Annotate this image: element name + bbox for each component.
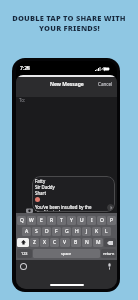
button[interactable]: G (62, 227, 71, 236)
button[interactable]: Shift (17, 238, 29, 247)
button[interactable]: M (93, 238, 103, 247)
staticText: Y (70, 217, 73, 224)
button[interactable]: N (82, 238, 92, 247)
staticText: G (65, 228, 69, 235)
staticText: Z (33, 239, 36, 246)
button[interactable]: H (72, 227, 81, 236)
button[interactable]: F (52, 227, 61, 236)
staticText: Q (20, 217, 24, 224)
button[interactable]: T (57, 216, 66, 225)
staticText: D (45, 228, 49, 235)
staticText: To: (19, 97, 26, 103)
staticText: Sir Daddy (35, 184, 55, 190)
staticText: K (95, 228, 99, 235)
button[interactable]: W (27, 216, 36, 225)
staticText: Shart (35, 190, 46, 196)
staticText: DOUBLE TAP TO SHARE WITH (12, 13, 126, 23)
staticText: 123 (21, 251, 28, 256)
staticText: You've been insulted by the Insultinator… (35, 204, 92, 212)
button[interactable]: V (60, 238, 70, 247)
button[interactable]: Emoji (19, 262, 28, 271)
button[interactable]: P (107, 216, 116, 225)
button[interactable]: L (102, 227, 111, 236)
staticText: X (43, 239, 46, 246)
staticText: M (96, 239, 101, 246)
staticText: L (105, 228, 108, 235)
staticText: J (86, 228, 88, 235)
staticText: W (29, 217, 34, 224)
staticText: C (53, 239, 57, 246)
staticText: YOUR FRIENDS! (39, 23, 100, 33)
button[interactable]: J (82, 227, 91, 236)
staticText: R (50, 217, 54, 224)
button[interactable]: Z (30, 238, 39, 247)
button[interactable]: C (50, 238, 59, 247)
button[interactable]: Y (67, 216, 76, 225)
button[interactable]: Dictation (105, 262, 114, 271)
staticText: Fatty (35, 178, 46, 184)
button[interactable]: K (92, 227, 101, 236)
staticText: New Message (50, 81, 84, 88)
button[interactable]: I (87, 216, 96, 225)
button[interactable]: S (32, 227, 41, 236)
staticText: A (25, 228, 29, 235)
staticText: space (61, 251, 72, 256)
button[interactable]: R (47, 216, 56, 225)
button[interactable]: space (33, 249, 100, 258)
button[interactable]: B (71, 238, 81, 247)
button[interactable]: Send (107, 204, 114, 211)
staticText: T (60, 217, 63, 224)
button[interactable]: Q (17, 216, 26, 225)
staticText: O (100, 217, 104, 224)
button[interactable]: A (22, 227, 31, 236)
staticText: P (110, 217, 114, 224)
staticText: S (35, 228, 38, 235)
button[interactable]: return (101, 249, 116, 258)
staticText: 7:28 (20, 65, 30, 72)
staticText: B (74, 239, 78, 246)
staticText: E (40, 217, 43, 224)
button[interactable]: E (37, 216, 46, 225)
staticText: N (85, 239, 89, 246)
button[interactable]: Cancel (98, 81, 113, 87)
staticText: F (55, 228, 58, 235)
staticText: return (103, 251, 115, 256)
button[interactable]: Camera (25, 206, 34, 215)
staticText: H (75, 228, 79, 235)
staticText: U (80, 217, 84, 224)
button[interactable]: D (42, 227, 51, 236)
staticText: V (63, 239, 67, 246)
staticText: I (91, 217, 93, 224)
button[interactable]: Delete (104, 238, 116, 247)
button[interactable]: O (97, 216, 106, 225)
button[interactable]: 123 (17, 249, 32, 258)
button[interactable]: U (77, 216, 86, 225)
button[interactable]: X (40, 238, 49, 247)
